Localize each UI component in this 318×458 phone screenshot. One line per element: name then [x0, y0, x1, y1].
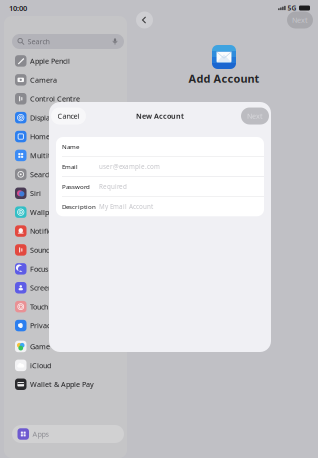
button[interactable]: iCloud	[4, 356, 127, 375]
staticText: Screen Time	[30, 283, 71, 293]
staticText: Cancel	[57, 111, 79, 121]
staticText: Wallpaper	[30, 207, 64, 217]
staticText: Email	[62, 162, 78, 171]
staticText: Game Center	[30, 341, 75, 351]
staticText: 5G	[287, 3, 296, 13]
staticText: Control Centre	[30, 94, 80, 104]
staticText: Focus	[30, 264, 48, 274]
staticText: Display & Brightness	[30, 113, 98, 122]
button[interactable]: Back	[136, 11, 153, 28]
staticText: Required	[99, 182, 127, 191]
button[interactable]: Home Screen & App Library	[4, 127, 127, 146]
button[interactable]: Search	[4, 165, 127, 184]
staticText: user@example.com	[99, 162, 160, 171]
staticText: Camera	[30, 75, 57, 85]
staticText: Touch ID & Passcode	[30, 302, 95, 311]
button[interactable]: Notifications	[4, 222, 127, 240]
button[interactable]: Wallet & Apple Pay	[4, 375, 127, 394]
button[interactable]: Apps	[7, 425, 124, 458]
staticText: Search	[27, 37, 49, 46]
button[interactable]: Siri	[4, 184, 127, 203]
staticText: My Email Account	[99, 202, 153, 211]
button[interactable]: Camera	[4, 70, 127, 89]
staticText: Multitasking & Gestures	[30, 150, 110, 160]
staticText: Notifications	[30, 226, 71, 236]
button[interactable]: Next	[287, 11, 313, 28]
button[interactable]: Apple Pencil	[4, 51, 127, 70]
staticText: 10:00	[9, 3, 27, 13]
button[interactable]: Touch ID & Passcode	[4, 297, 127, 316]
button[interactable]: Focus	[4, 259, 127, 278]
button[interactable]: Cancel	[51, 107, 86, 124]
button[interactable]: Privacy & Security	[4, 316, 127, 335]
staticText: Home Screen & App Library	[30, 132, 122, 141]
staticText: Wallet & Apple Pay	[30, 379, 94, 389]
staticText: Siri	[30, 188, 41, 198]
staticText: Name	[62, 142, 79, 151]
button[interactable]: Next	[241, 107, 269, 124]
staticText: New Account	[136, 111, 184, 121]
button[interactable]: Control Centre	[4, 89, 127, 108]
staticText: Description	[62, 202, 96, 211]
button[interactable]: Game Center	[4, 337, 127, 356]
staticText: Search	[30, 169, 52, 179]
staticText: Privacy & Security	[30, 321, 90, 330]
staticText: Next	[247, 111, 263, 121]
button[interactable]: Display & Brightness	[4, 108, 127, 127]
staticText: Next	[292, 15, 308, 25]
staticText: Password	[62, 182, 90, 191]
staticText: iCloud	[30, 360, 51, 370]
staticText: Apple Pencil	[30, 56, 70, 66]
staticText: Sounds	[30, 245, 53, 255]
button[interactable]: Screen Time	[4, 278, 127, 297]
staticText: Add Account	[188, 71, 259, 86]
button[interactable]: Wallpaper	[4, 203, 127, 222]
staticText: Apps	[32, 429, 48, 439]
button[interactable]: Multitasking & Gestures	[4, 146, 127, 165]
button[interactable]: Sounds	[4, 240, 127, 259]
